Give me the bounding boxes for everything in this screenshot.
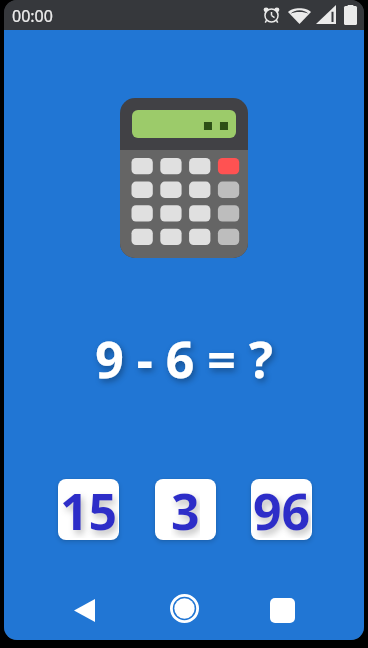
button[interactable]: 3 [155,479,216,540]
staticText: 3 [171,479,200,538]
button[interactable]: Back [62,588,107,633]
button[interactable]: 96 [251,479,312,540]
staticText: 9 - 6 = ? [95,325,273,393]
button[interactable]: Home [162,586,207,631]
staticText: 96 [253,479,311,538]
staticText: 00:00 [12,5,53,27]
button[interactable]: 15 [58,479,119,540]
button[interactable]: Recents [260,588,305,633]
staticText: 15 [60,479,118,538]
